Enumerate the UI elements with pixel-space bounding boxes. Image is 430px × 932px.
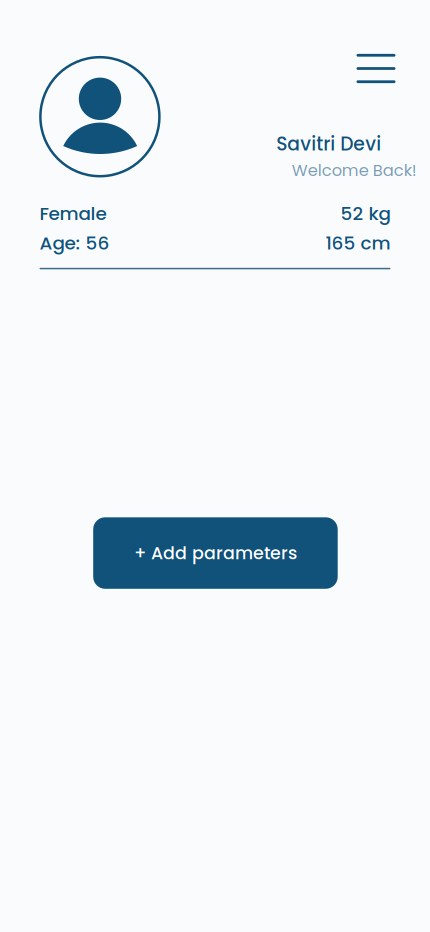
- staticText: + Add parameters: [134, 541, 297, 565]
- staticText: 165 cm: [325, 230, 390, 256]
- button[interactable]: Menu: [350, 45, 402, 91]
- staticText: Welcome Back!: [292, 159, 417, 182]
- staticText: Age: 56: [39, 230, 109, 256]
- staticText: Savitri Devi: [276, 131, 381, 157]
- staticText: 52 kg: [340, 201, 390, 226]
- staticText: Female: [39, 201, 106, 226]
- button[interactable]: + Add parameters: [93, 517, 338, 589]
